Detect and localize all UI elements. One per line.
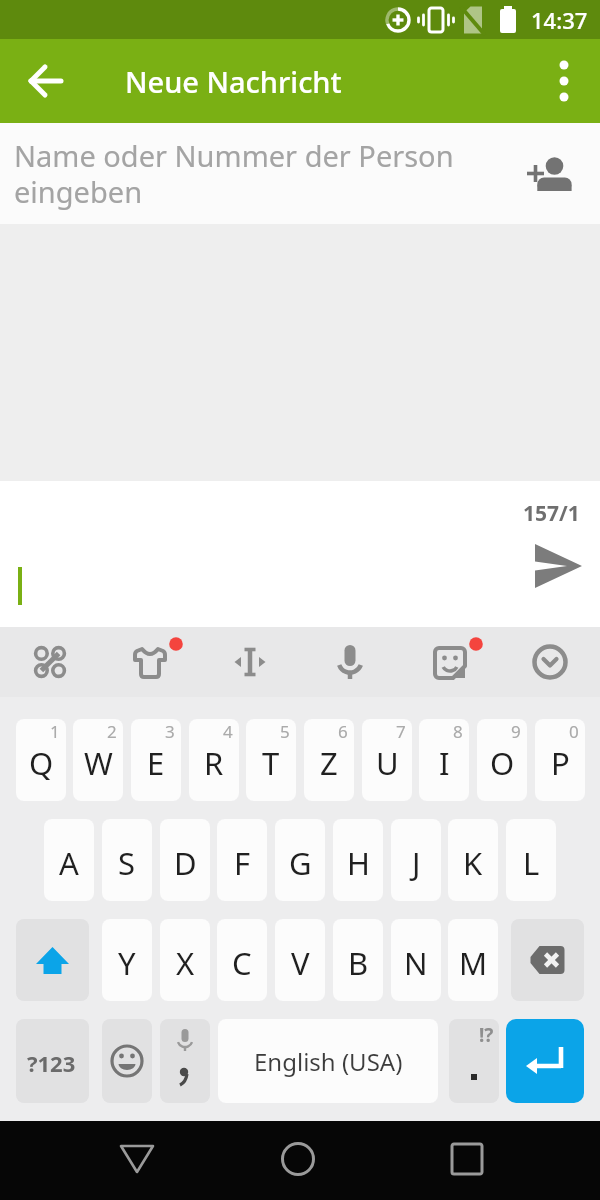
staticText: F bbox=[234, 842, 251, 884]
staticText: !? bbox=[479, 1022, 494, 1048]
staticText: X bbox=[176, 942, 195, 984]
button[interactable]: K bbox=[448, 819, 498, 901]
button[interactable]: P bbox=[535, 719, 585, 801]
button[interactable] bbox=[0, 627, 100, 697]
button[interactable]: Name oder Nummer der Person eingeben bbox=[0, 123, 600, 224]
staticText: 5 bbox=[280, 720, 290, 743]
button[interactable]: J bbox=[391, 819, 441, 901]
staticText: R bbox=[204, 742, 224, 784]
staticText: Y bbox=[118, 942, 136, 984]
button[interactable]: I bbox=[419, 719, 469, 801]
staticText: U bbox=[376, 742, 399, 784]
button[interactable]: U bbox=[362, 719, 412, 801]
button[interactable] bbox=[100, 627, 200, 697]
button[interactable] bbox=[160, 1019, 210, 1103]
button[interactable] bbox=[506, 1019, 584, 1103]
staticText: A bbox=[59, 842, 79, 884]
staticText: E bbox=[147, 742, 165, 784]
button[interactable]: B bbox=[333, 919, 383, 1001]
button[interactable]: T bbox=[246, 719, 296, 801]
button[interactable] bbox=[427, 1137, 507, 1181]
staticText: I bbox=[439, 742, 450, 784]
staticText: W bbox=[84, 742, 113, 784]
button[interactable] bbox=[511, 919, 584, 1001]
button[interactable]: A bbox=[44, 819, 94, 901]
staticText: 2 bbox=[107, 720, 117, 743]
staticText: 7 bbox=[396, 720, 406, 743]
staticText: Neue Nachricht bbox=[125, 62, 342, 101]
button[interactable] bbox=[16, 1019, 89, 1103]
staticText: 1 bbox=[50, 720, 60, 743]
button[interactable]: Z bbox=[304, 719, 354, 801]
staticText: Z bbox=[320, 742, 338, 784]
staticText: P bbox=[551, 742, 570, 784]
staticText: Q bbox=[29, 742, 54, 784]
staticText: S bbox=[118, 842, 136, 884]
button[interactable]: Y bbox=[102, 919, 152, 1001]
staticText: J bbox=[412, 842, 421, 884]
staticText: H bbox=[347, 842, 370, 884]
staticText: B bbox=[348, 942, 369, 984]
button[interactable] bbox=[200, 627, 300, 697]
staticText: 0 bbox=[569, 720, 579, 743]
button[interactable]: W bbox=[73, 719, 123, 801]
button[interactable]: G bbox=[275, 819, 325, 901]
button[interactable]: N bbox=[391, 919, 441, 1001]
staticText: 8 bbox=[453, 720, 463, 743]
staticText: 4 bbox=[223, 720, 233, 743]
staticText: M bbox=[459, 942, 488, 984]
button[interactable]: E bbox=[131, 719, 181, 801]
staticText: G bbox=[289, 842, 312, 884]
button[interactable]: L bbox=[506, 819, 556, 901]
button[interactable] bbox=[102, 1019, 152, 1103]
button[interactable]: X bbox=[160, 919, 210, 1001]
button[interactable]: R bbox=[189, 719, 239, 801]
button[interactable] bbox=[526, 150, 574, 198]
button[interactable] bbox=[300, 627, 400, 697]
button[interactable]: C bbox=[217, 919, 267, 1001]
button[interactable]: M bbox=[448, 919, 498, 1001]
button[interactable]: O bbox=[477, 719, 527, 801]
button[interactable] bbox=[540, 57, 588, 105]
button[interactable]: F bbox=[217, 819, 267, 901]
staticText: English (USA) bbox=[254, 1045, 403, 1078]
button[interactable]: S bbox=[102, 819, 152, 901]
staticText: V bbox=[291, 942, 310, 984]
staticText: T bbox=[262, 742, 280, 784]
staticText: N bbox=[404, 942, 428, 984]
button[interactable] bbox=[22, 56, 72, 106]
button[interactable] bbox=[526, 535, 588, 597]
button[interactable] bbox=[16, 919, 89, 1001]
button[interactable] bbox=[500, 627, 600, 697]
staticText: 9 bbox=[511, 720, 521, 743]
button[interactable] bbox=[449, 1019, 499, 1103]
staticText: 6 bbox=[338, 720, 348, 743]
button[interactable] bbox=[97, 1137, 177, 1181]
staticText: 3 bbox=[165, 720, 175, 743]
staticText: O bbox=[490, 742, 515, 784]
button[interactable] bbox=[258, 1137, 338, 1181]
staticText: L bbox=[523, 842, 540, 884]
staticText: ?123 bbox=[27, 1048, 76, 1078]
button[interactable]: V bbox=[275, 919, 325, 1001]
staticText: D bbox=[174, 842, 197, 884]
staticText: C bbox=[232, 942, 252, 984]
button[interactable]: D bbox=[160, 819, 210, 901]
staticText: 14:37 bbox=[531, 5, 588, 35]
button[interactable]: H bbox=[333, 819, 383, 901]
staticText: 157/1 bbox=[523, 499, 580, 528]
button[interactable] bbox=[400, 627, 500, 697]
staticText: Name oder Nummer der Person eingeben bbox=[14, 136, 454, 212]
button[interactable]: English (USA) bbox=[218, 1019, 438, 1103]
staticText: K bbox=[463, 842, 483, 884]
button[interactable]: Q bbox=[16, 719, 66, 801]
